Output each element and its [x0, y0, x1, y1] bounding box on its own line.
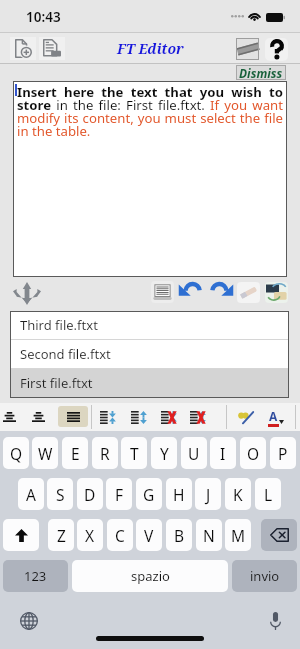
button[interactable]: Sort lines: [187, 406, 209, 428]
button[interactable]: Second file.ftxt: [10, 340, 289, 368]
staticText: T: [130, 443, 139, 464]
button[interactable]: Erase: [237, 282, 260, 303]
button[interactable]: K: [225, 478, 251, 510]
button[interactable]: 123: [3, 560, 68, 592]
button[interactable]: Dictation: [263, 608, 288, 633]
button[interactable]: Justify: [58, 406, 88, 427]
button[interactable]: C: [107, 519, 133, 551]
staticText: A: [269, 408, 278, 424]
staticText: N: [203, 525, 215, 546]
staticText: J: [206, 484, 211, 505]
button[interactable]: Y: [151, 437, 177, 469]
staticText: F: [115, 484, 124, 505]
staticText: R: [100, 443, 110, 464]
button[interactable]: Align: [0, 406, 20, 428]
staticText: G: [143, 484, 155, 505]
button[interactable]: U: [181, 437, 207, 469]
button[interactable]: Export as PDF: [39, 37, 65, 60]
button[interactable]: Resize editor: [11, 280, 43, 306]
button[interactable]: Help: [265, 38, 288, 61]
staticText: C: [115, 525, 125, 546]
button[interactable]: H: [166, 478, 192, 510]
staticText: Insert here the text that you wish to st…: [17, 83, 283, 140]
button[interactable]: Dismiss: [236, 65, 286, 80]
staticText: L: [264, 484, 273, 505]
button[interactable]: Z: [48, 519, 74, 551]
button[interactable]: N: [196, 519, 222, 551]
staticText: B: [174, 525, 185, 546]
staticText: V: [144, 525, 154, 546]
staticText: M: [231, 525, 246, 546]
staticText: Q: [10, 443, 23, 464]
staticText: K: [233, 484, 243, 505]
button[interactable]: Appearance: [236, 38, 259, 60]
button[interactable]: Sort lines: [158, 406, 180, 428]
button[interactable]: Shift: [3, 519, 39, 551]
staticText: O: [247, 443, 260, 464]
button[interactable]: Sort lines: [97, 406, 119, 428]
button[interactable]: T: [121, 437, 147, 469]
button[interactable]: Third file.ftxt: [10, 311, 289, 339]
staticText: A: [26, 484, 36, 505]
button[interactable]: Sort lines: [128, 406, 150, 428]
button[interactable]: A: [18, 478, 44, 510]
button[interactable]: spazio: [72, 560, 228, 592]
button[interactable]: Backspace: [261, 519, 297, 551]
button[interactable]: I: [210, 437, 236, 469]
staticText: E: [71, 443, 80, 464]
button[interactable]: O: [240, 437, 266, 469]
button[interactable]: R: [92, 437, 118, 469]
staticText: P: [278, 443, 288, 464]
button[interactable]: Align: [27, 406, 49, 428]
staticText: Dismiss: [239, 65, 283, 80]
button[interactable]: F: [106, 478, 132, 510]
button[interactable]: P: [270, 437, 296, 469]
staticText: First file.ftxt: [20, 374, 93, 392]
staticText: W: [38, 443, 53, 464]
button[interactable]: First file.ftxt: [10, 369, 289, 397]
button[interactable]: E: [62, 437, 88, 469]
button[interactable]: V: [136, 519, 162, 551]
button[interactable]: Spell check: [234, 406, 256, 428]
staticText: Third file.ftxt: [20, 316, 98, 334]
staticText: H: [173, 484, 185, 505]
button[interactable]: Text colour: [264, 406, 288, 428]
staticText: 10:43: [26, 8, 61, 26]
staticText: 123: [24, 567, 47, 585]
button[interactable]: L: [255, 478, 281, 510]
staticText: FT Editor: [117, 39, 184, 58]
button[interactable]: S: [47, 478, 73, 510]
button[interactable]: M: [225, 519, 251, 551]
button[interactable]: Read aloud: [151, 281, 174, 303]
button[interactable]: J: [195, 478, 221, 510]
button[interactable]: New file: [10, 37, 36, 60]
button[interactable]: W: [32, 437, 58, 469]
staticText: Y: [160, 443, 169, 464]
staticText: D: [84, 484, 96, 505]
staticText: spazio: [131, 567, 170, 585]
button[interactable]: invio: [232, 560, 297, 592]
button[interactable]: B: [166, 519, 192, 551]
button[interactable]: Change language: [16, 608, 41, 633]
button[interactable]: G: [136, 478, 162, 510]
staticText: S: [56, 484, 65, 505]
button[interactable]: Restore: [265, 282, 288, 303]
staticText: Second file.ftxt: [20, 345, 111, 363]
button[interactable]: X: [77, 519, 103, 551]
staticText: U: [188, 443, 200, 464]
button[interactable]: Redo: [209, 283, 232, 302]
staticText: Z: [57, 525, 66, 546]
button[interactable]: Q: [3, 437, 29, 469]
staticText: invio: [250, 567, 280, 585]
button[interactable]: D: [77, 478, 103, 510]
staticText: X: [85, 525, 95, 546]
staticText: I: [220, 443, 226, 464]
button[interactable]: Undo: [180, 283, 203, 302]
